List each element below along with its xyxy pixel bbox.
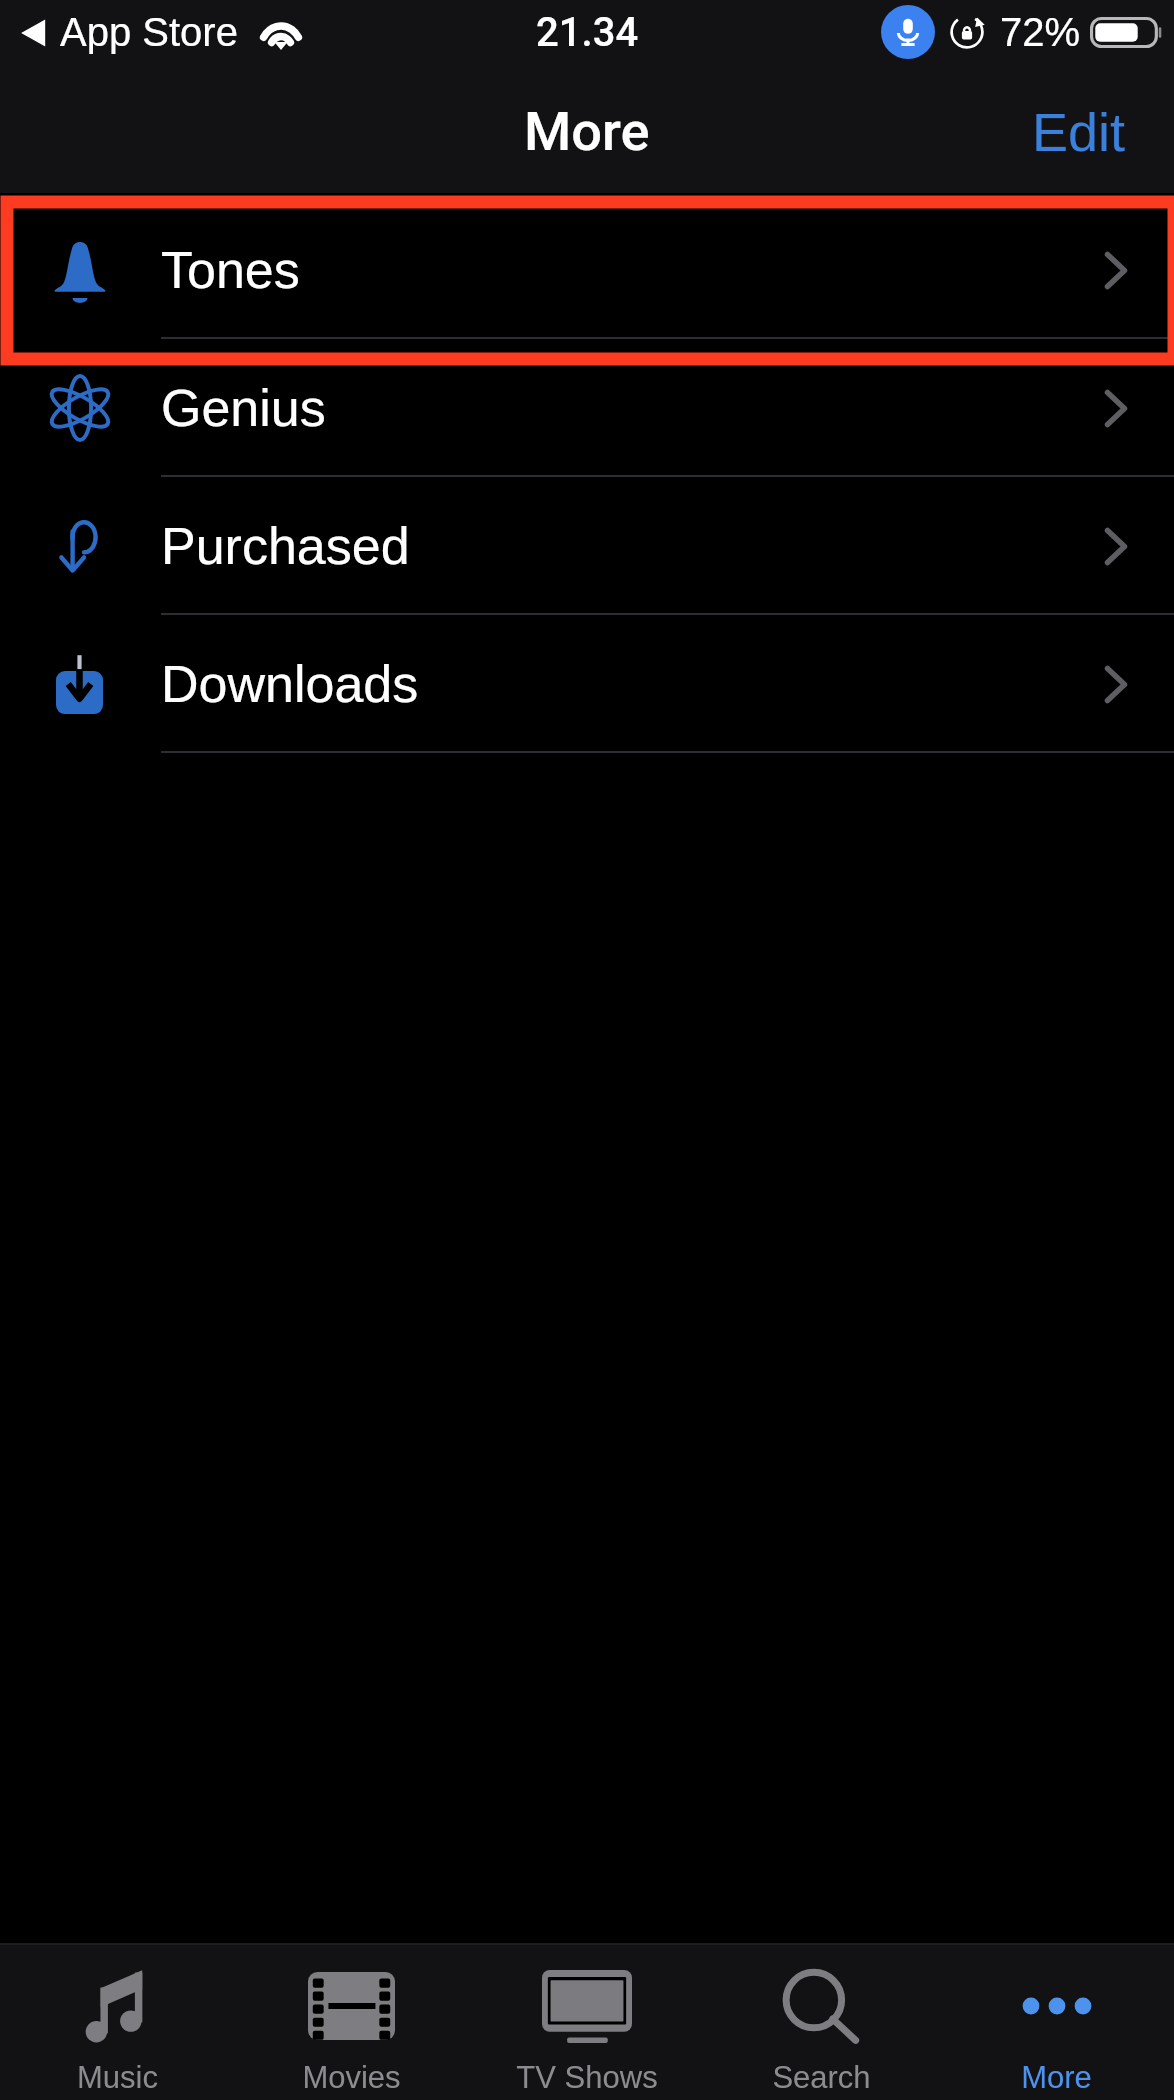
staticText: Search [772,2060,871,2095]
staticText: More [1021,2060,1092,2095]
button[interactable]: TV Shows [469,1945,704,2100]
button[interactable]: Search [704,1945,939,2100]
button[interactable]: Edit [984,82,1174,182]
staticText: App Store [60,10,238,55]
button[interactable]: Genius [0,339,1174,477]
staticText: Tones [161,241,300,299]
staticText: Music [77,2060,158,2095]
staticText: Edit [1032,102,1126,162]
button[interactable]: Movies [234,1945,469,2100]
staticText: 72% [1000,10,1081,55]
staticText: Movies [302,2060,401,2095]
staticText: Downloads [161,655,419,713]
staticText: 21.34 [536,9,639,56]
other: Microphone in use [881,5,935,59]
button[interactable]: More [939,1945,1174,2100]
button[interactable]: Tones [0,201,1174,339]
staticText: Genius [161,379,326,437]
button[interactable]: Music [0,1945,234,2100]
staticText: More [524,100,650,163]
staticText: Purchased [161,517,410,575]
staticText: TV Shows [516,2060,658,2095]
button[interactable]: Purchased [0,477,1174,615]
button[interactable]: Downloads [0,615,1174,753]
